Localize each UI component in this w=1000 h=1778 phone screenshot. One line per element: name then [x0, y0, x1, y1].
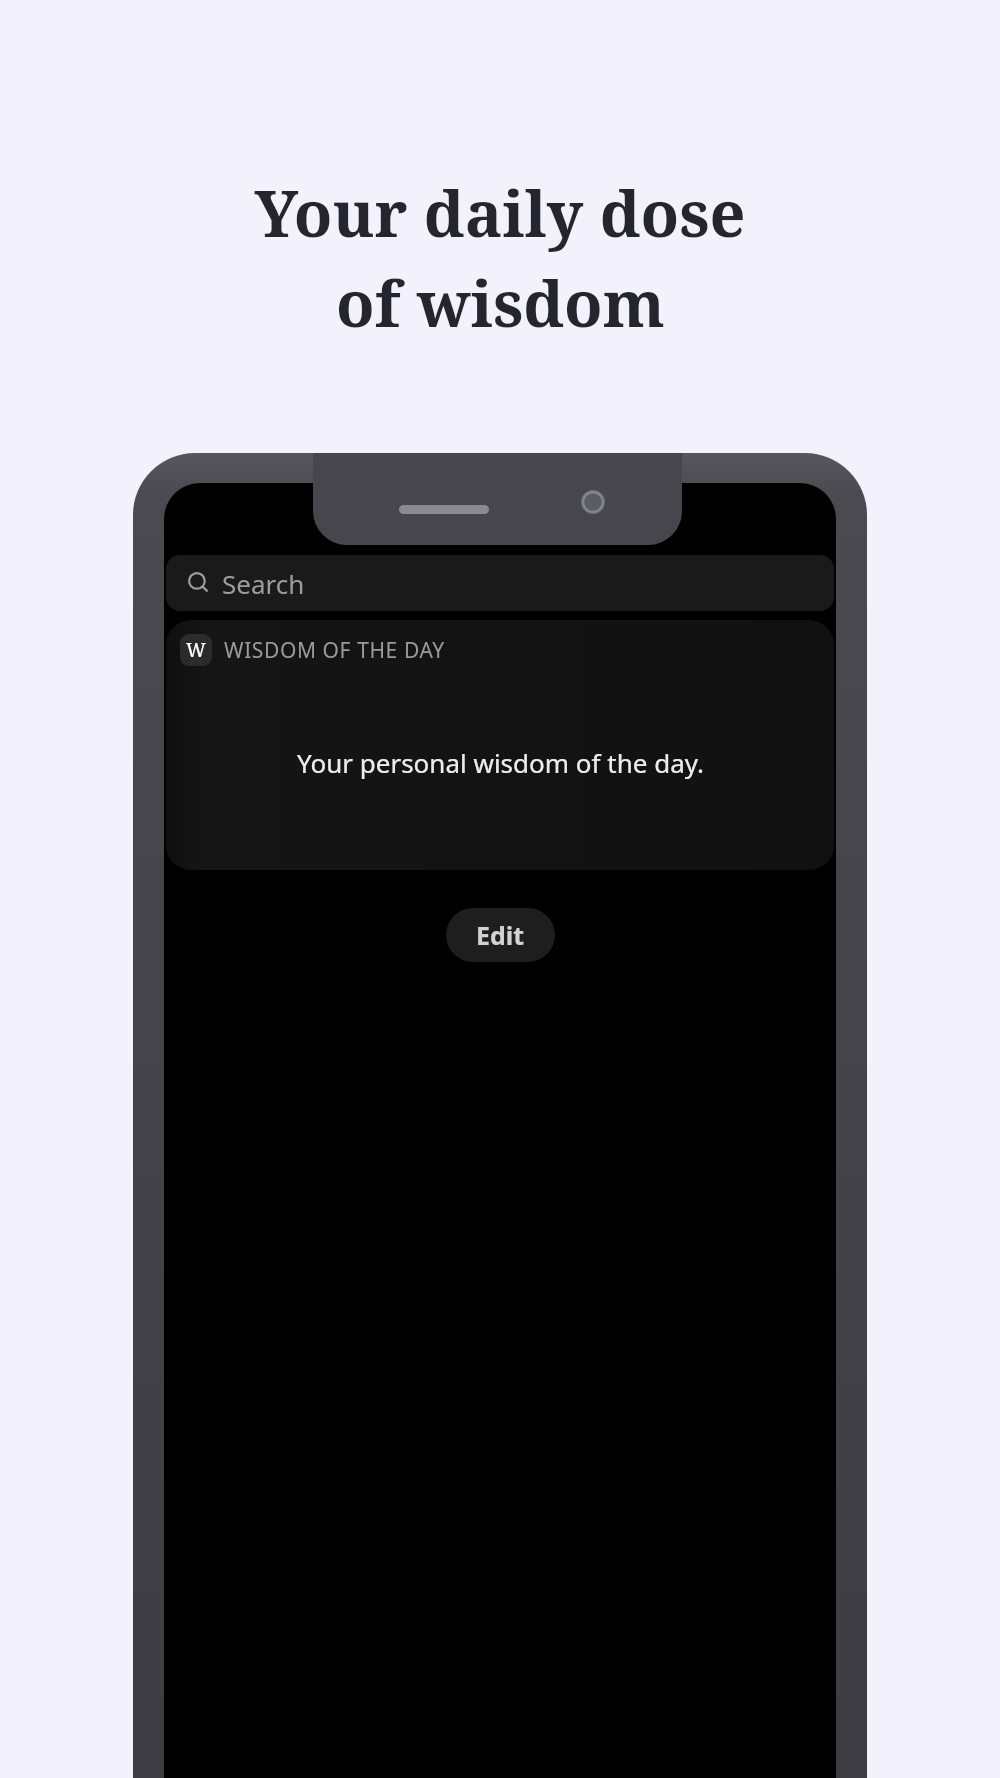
staticText: Your daily dose [254, 170, 746, 256]
staticText: Your personal wisdom of the day. [297, 745, 704, 780]
staticText: of wisdom [336, 260, 665, 346]
button[interactable]: Search [166, 555, 834, 611]
staticText: W [186, 637, 206, 663]
button[interactable]: Edit [446, 908, 555, 962]
staticText: WISDOM OF THE DAY [224, 636, 445, 665]
staticText: Search [222, 566, 305, 601]
button[interactable]: W [166, 620, 834, 870]
staticText: Edit [476, 918, 525, 952]
